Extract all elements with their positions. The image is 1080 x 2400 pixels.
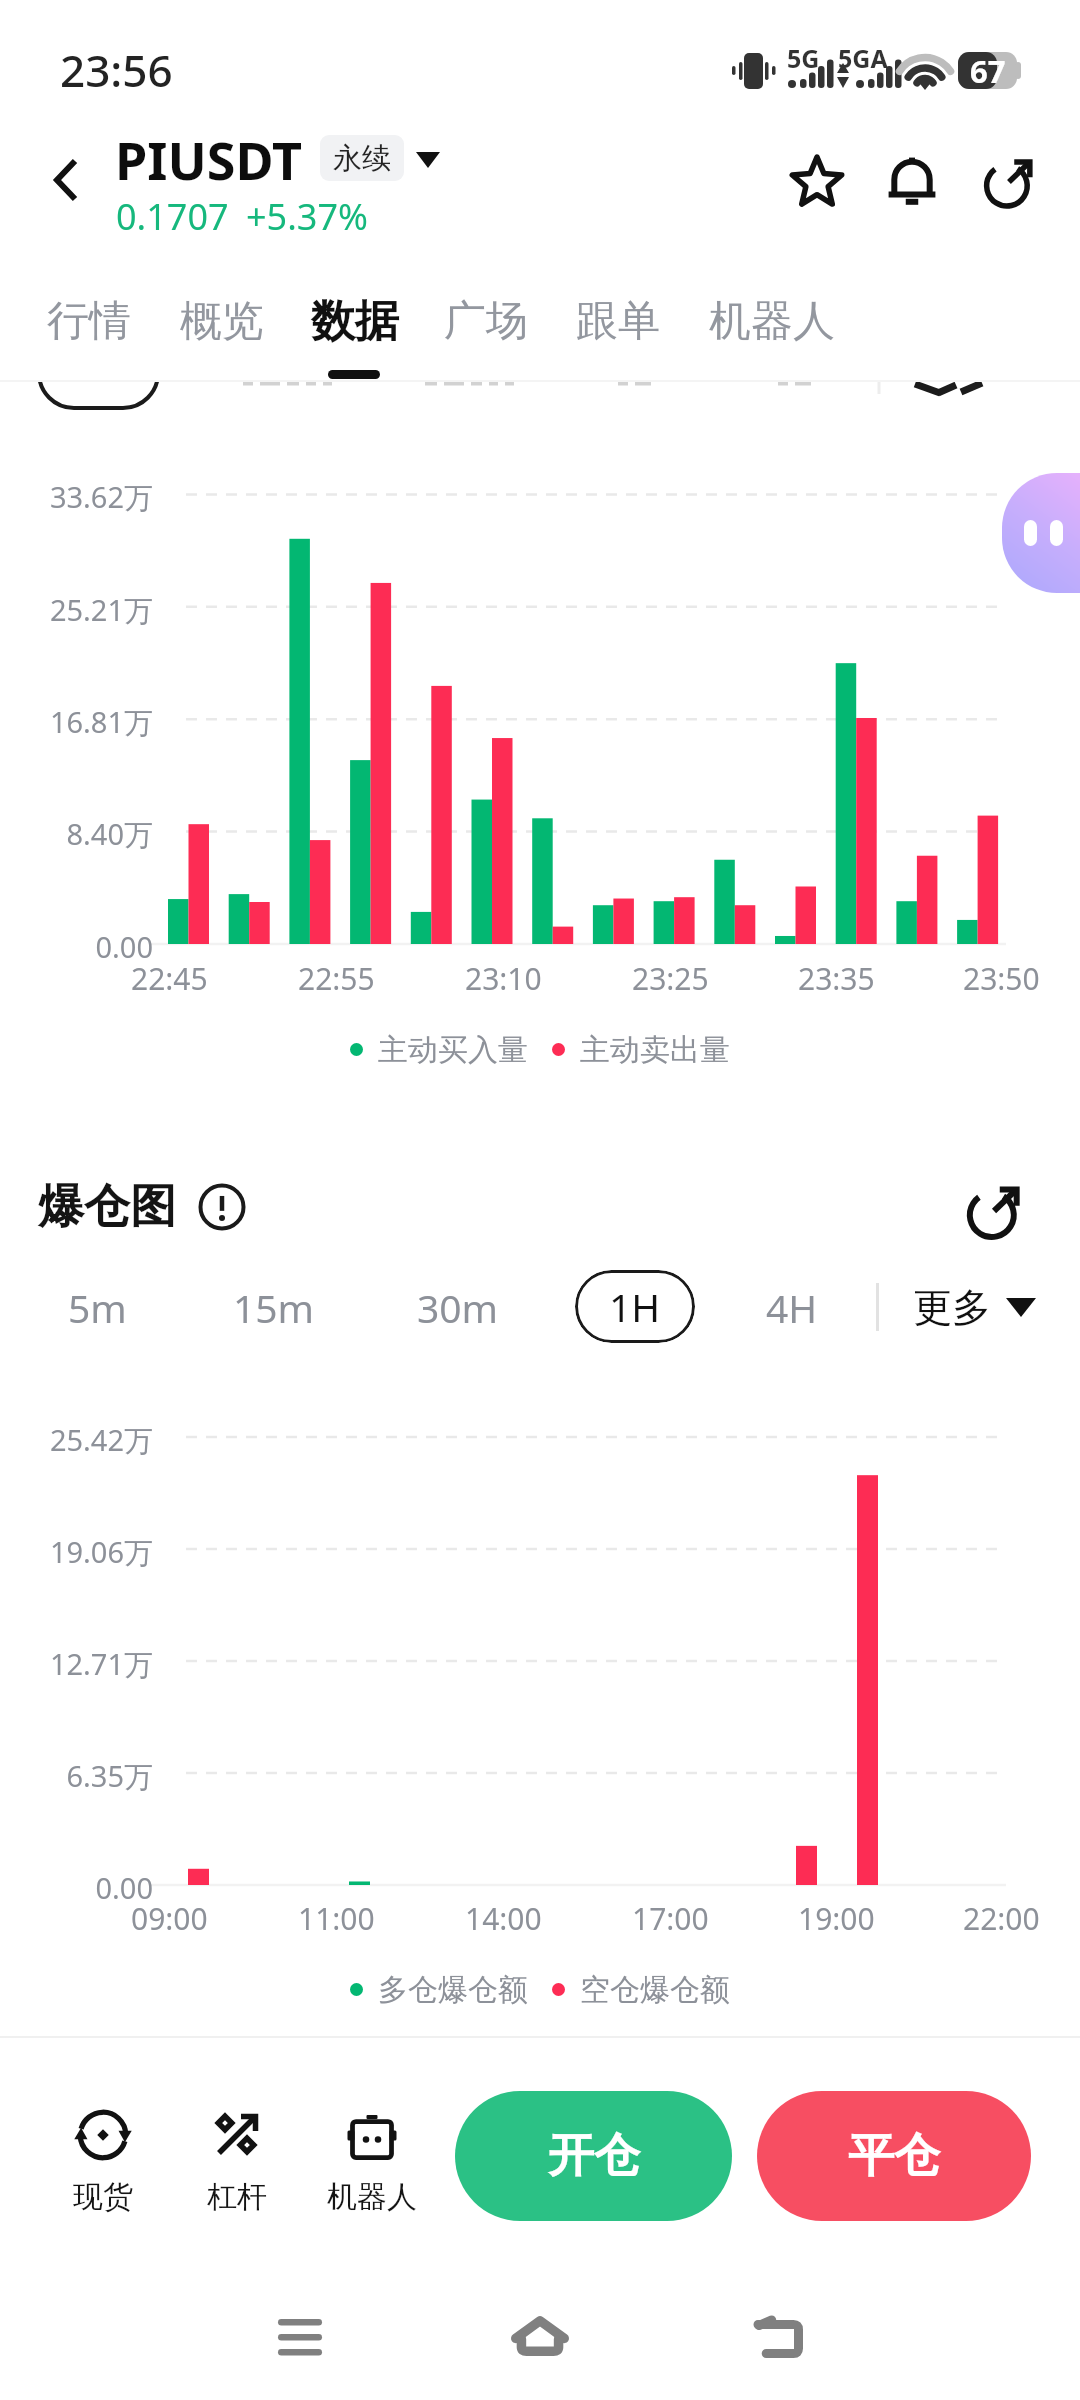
- button[interactable]: Alerts: [866, 135, 958, 227]
- staticText: 14:00: [465, 1898, 542, 1939]
- staticText: 4H: [766, 1281, 818, 1334]
- staticText: 永续: [333, 140, 391, 177]
- button[interactable]: 广场: [430, 284, 542, 358]
- staticText: 23:50: [963, 958, 1040, 999]
- button[interactable]: 行情: [33, 284, 145, 358]
- button[interactable]: Change contract: [416, 152, 440, 168]
- staticText: 开仓: [548, 2127, 640, 2185]
- staticText: 0.00: [0, 1868, 153, 1907]
- staticText: 23:25: [632, 958, 709, 999]
- staticText: 15m: [233, 1281, 315, 1334]
- staticText: 30m: [417, 1281, 499, 1334]
- button[interactable]: 杠杆: [175, 2090, 299, 2220]
- staticText: 主动卖出量: [580, 1031, 730, 1069]
- staticText: 更多: [913, 1283, 991, 1332]
- staticText: 数据: [311, 294, 399, 349]
- staticText: 19.06万: [0, 1532, 153, 1572]
- staticText: 22:45: [131, 958, 208, 999]
- button[interactable]: Info: [196, 1181, 248, 1233]
- staticText: 主动买入量: [378, 1031, 528, 1069]
- staticText: 8.40万: [0, 814, 153, 854]
- staticText: 16.81万: [0, 702, 153, 742]
- button[interactable]: AI assistant: [1002, 473, 1080, 593]
- button[interactable]: 概览: [166, 284, 278, 358]
- staticText: 23:10: [465, 958, 542, 999]
- staticText: 0.1707: [116, 192, 229, 241]
- button[interactable]: 跟单: [562, 284, 674, 358]
- button[interactable]: 现货: [41, 2090, 165, 2220]
- button[interactable]: Share: [962, 136, 1054, 228]
- staticText: 67: [970, 50, 1006, 92]
- staticText: 行情: [47, 295, 131, 348]
- staticText: 25.21万: [0, 590, 153, 630]
- button[interactable]: Back: [720, 2294, 840, 2384]
- staticText: 12.71万: [0, 1644, 153, 1684]
- button[interactable]: 1H: [575, 1270, 695, 1343]
- button[interactable]: Back: [26, 140, 106, 220]
- staticText: +5.37%: [246, 192, 368, 241]
- staticText: PIUSDT: [115, 124, 302, 195]
- staticText: 22:00: [963, 1898, 1040, 1939]
- button[interactable]: 30m: [403, 1272, 513, 1342]
- button[interactable]: 5m: [42, 1272, 152, 1342]
- button[interactable]: 永续: [320, 135, 404, 181]
- staticText: 22:55: [298, 958, 375, 999]
- staticText: 机器人: [709, 295, 835, 348]
- button[interactable]: Recents: [240, 2292, 360, 2382]
- button[interactable]: 机器人: [695, 284, 849, 358]
- button[interactable]: Favorite: [771, 135, 863, 227]
- staticText: 爆仓图: [38, 1178, 176, 1236]
- staticText: 23:35: [798, 958, 875, 999]
- staticText: 0.00: [0, 927, 153, 966]
- staticText: 杠杆: [207, 2178, 267, 2216]
- staticText: 6.35万: [0, 1756, 153, 1796]
- staticText: 09:00: [131, 1898, 208, 1939]
- staticText: 空仓爆仓额: [580, 1971, 730, 2009]
- staticText: 23:56: [60, 40, 173, 100]
- staticText: 5G: [787, 41, 820, 75]
- button[interactable]: Home: [480, 2291, 600, 2381]
- staticText: 机器人: [327, 2178, 417, 2216]
- button[interactable]: 4H: [737, 1272, 847, 1342]
- staticText: 概览: [180, 295, 264, 348]
- staticText: 5m: [68, 1281, 127, 1334]
- button[interactable]: 机器人: [310, 2090, 434, 2220]
- button[interactable]: 开仓: [455, 2091, 732, 2221]
- staticText: 11:00: [298, 1898, 375, 1939]
- staticText: 25.42万: [0, 1420, 153, 1460]
- staticText: 17:00: [632, 1898, 709, 1939]
- staticText: 1H: [609, 1280, 661, 1333]
- button[interactable]: Expand chart: [958, 1176, 1028, 1246]
- button[interactable]: 数据: [297, 284, 413, 358]
- button[interactable]: 平仓: [757, 2091, 1031, 2221]
- staticText: 33.62万: [0, 477, 153, 517]
- staticText: 跟单: [576, 295, 660, 348]
- button[interactable]: 15m: [219, 1272, 329, 1342]
- staticText: 现货: [73, 2178, 133, 2216]
- staticText: 平仓: [848, 2127, 940, 2185]
- staticText: 广场: [444, 295, 528, 348]
- button[interactable]: 更多: [913, 1272, 1037, 1342]
- staticText: 5GA: [838, 41, 888, 75]
- staticText: 19:00: [798, 1898, 875, 1939]
- staticText: 多仓爆仓额: [378, 1971, 528, 2009]
